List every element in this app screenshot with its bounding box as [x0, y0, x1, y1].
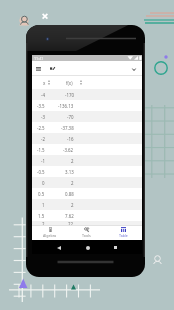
- staticText: f(x): [66, 80, 73, 86]
- staticText: 22: [68, 221, 74, 225]
- button[interactable]: Algebra: [32, 225, 68, 240]
- button[interactable]: -0.5: [32, 166, 142, 177]
- staticText: x: [43, 80, 46, 86]
- staticText: -4: [41, 92, 45, 98]
- button[interactable]: 1.5: [32, 210, 142, 221]
- staticText: Table: [119, 233, 128, 238]
- staticText: 0.5: [38, 191, 45, 197]
- button[interactable]: -4: [32, 89, 142, 100]
- staticText: -3.5: [37, 103, 45, 109]
- button[interactable]: 0.5: [32, 188, 142, 199]
- staticText: 2: [71, 202, 74, 208]
- button[interactable]: Function: [46, 62, 59, 75]
- button[interactable]: 2: [32, 221, 142, 225]
- button[interactable]: -3: [32, 111, 142, 122]
- button[interactable]: Back: [53, 242, 64, 253]
- button[interactable]: Menu: [32, 62, 45, 75]
- button[interactable]: Recents: [110, 242, 121, 253]
- staticText: Algebra: [43, 233, 57, 238]
- staticText: 2: [71, 180, 74, 186]
- staticText: -1.5: [37, 147, 45, 153]
- staticText: -170: [65, 92, 74, 98]
- button[interactable]: Expand: [128, 63, 140, 75]
- button[interactable]: x: [32, 76, 142, 89]
- button[interactable]: -3.5: [32, 100, 142, 111]
- button[interactable]: -1: [32, 155, 142, 166]
- staticText: 2: [71, 158, 74, 164]
- staticText: Tools: [82, 233, 91, 238]
- staticText: -37.38: [61, 125, 74, 131]
- staticText: 1: [42, 202, 45, 208]
- staticText: -2: [41, 136, 45, 142]
- staticText: 3.13: [65, 169, 74, 175]
- button[interactable]: Tools: [68, 225, 105, 240]
- button[interactable]: -2.5: [32, 122, 142, 133]
- staticText: 7.62: [65, 213, 74, 219]
- staticText: 1.5: [38, 213, 45, 219]
- staticText: -3: [41, 114, 45, 120]
- staticText: 2: [42, 221, 45, 225]
- staticText: -2.5: [37, 125, 45, 131]
- button[interactable]: Table: [105, 225, 142, 240]
- button[interactable]: 0: [32, 177, 142, 188]
- staticText: 0: [42, 180, 45, 186]
- staticText: -3.62: [63, 147, 74, 153]
- staticText: 11:41: [34, 56, 44, 61]
- button[interactable]: -1.5: [32, 144, 142, 155]
- staticText: -136.13: [58, 103, 74, 109]
- staticText: -70: [67, 114, 74, 120]
- staticText: 0.88: [65, 191, 74, 197]
- staticText: -0.5: [37, 169, 45, 175]
- button[interactable]: -2: [32, 133, 142, 144]
- staticText: -1: [41, 158, 45, 164]
- staticText: -16: [67, 136, 74, 142]
- button[interactable]: 1: [32, 199, 142, 210]
- button[interactable]: Home: [82, 242, 93, 253]
